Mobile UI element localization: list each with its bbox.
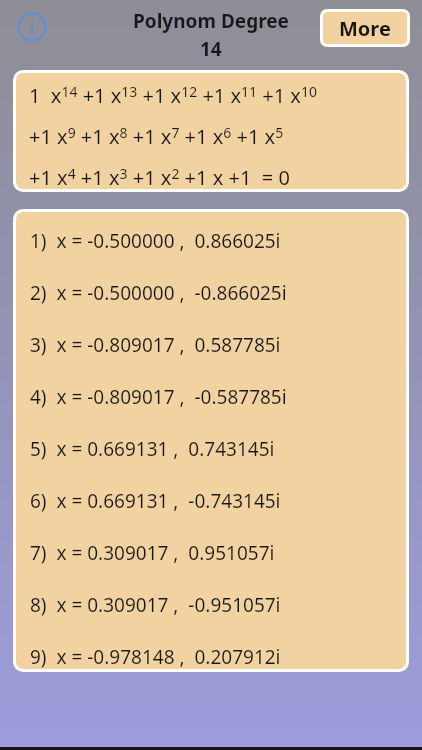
button[interactable]: 8) x = 0.309017 , -0.951057i [30,592,409,644]
button[interactable]: 5) x = 0.669131 , 0.743145i [30,436,409,488]
staticText: i [29,16,35,39]
staticText: 2) x = -0.500000 , -0.866025i [30,280,287,306]
staticText: 3) x = -0.809017 , 0.587785i [30,332,281,358]
button[interactable]: 4) x = -0.809017 , -0.587785i [30,384,409,436]
staticText: 5) x = 0.669131 , 0.743145i [30,436,275,462]
button[interactable]: 9) x = -0.978148 , 0.207912i [30,644,409,672]
staticText: 4) x = -0.809017 , -0.587785i [30,384,287,410]
button[interactable]: 6) x = 0.669131 , -0.743145i [30,488,409,540]
staticText: More [339,15,391,42]
staticText: +1 x4 +1 x3 +1 x2 +1 x +1 = 0 [29,164,290,191]
staticText: 14 [200,36,222,62]
staticText: 1) x = -0.500000 , 0.866025i [30,228,281,254]
button[interactable]: 2) x = -0.500000 , -0.866025i [30,280,409,332]
staticText: 7) x = 0.309017 , 0.951057i [30,540,275,566]
button[interactable]: 7) x = 0.309017 , 0.951057i [30,540,409,592]
staticText: +1 x9 +1 x8 +1 x7 +1 x6 +1 x5 [29,123,284,150]
staticText: 1 x14 +1 x13 +1 x12 +1 x11 +1 x10 [29,82,317,109]
staticText: 8) x = 0.309017 , -0.951057i [30,592,281,618]
staticText: 6) x = 0.669131 , -0.743145i [30,488,281,514]
staticText: Polynom Degree [133,8,289,34]
button[interactable]: 1 x14 +1 x13 +1 x12 +1 x11 +1 x10 [13,70,409,192]
button[interactable]: More [320,9,410,47]
staticText: 9) x = -0.978148 , 0.207912i [30,644,281,670]
button[interactable]: Info [12,7,52,47]
button[interactable]: 3) x = -0.809017 , 0.587785i [30,332,409,384]
button[interactable]: 1) x = -0.500000 , 0.866025i [30,228,409,280]
